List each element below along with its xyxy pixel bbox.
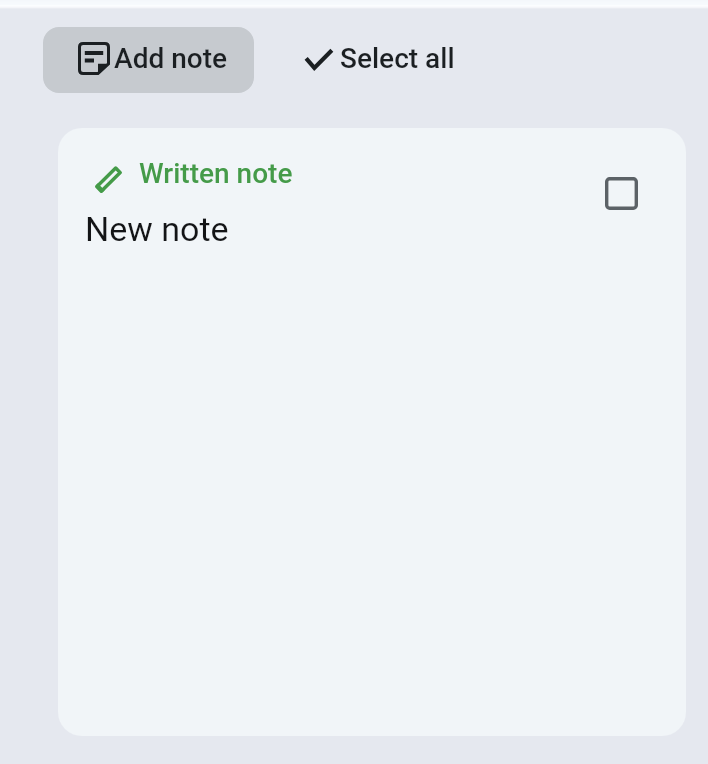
button[interactable]: Select note [597,169,645,217]
button[interactable]: Select all [296,33,460,87]
staticText: Select all [340,42,455,75]
staticText: Written note [139,157,293,190]
staticText: New note [85,209,229,249]
button[interactable]: Add note [43,27,254,93]
staticText: Add note [114,42,228,75]
button[interactable]: Written note [58,128,686,736]
